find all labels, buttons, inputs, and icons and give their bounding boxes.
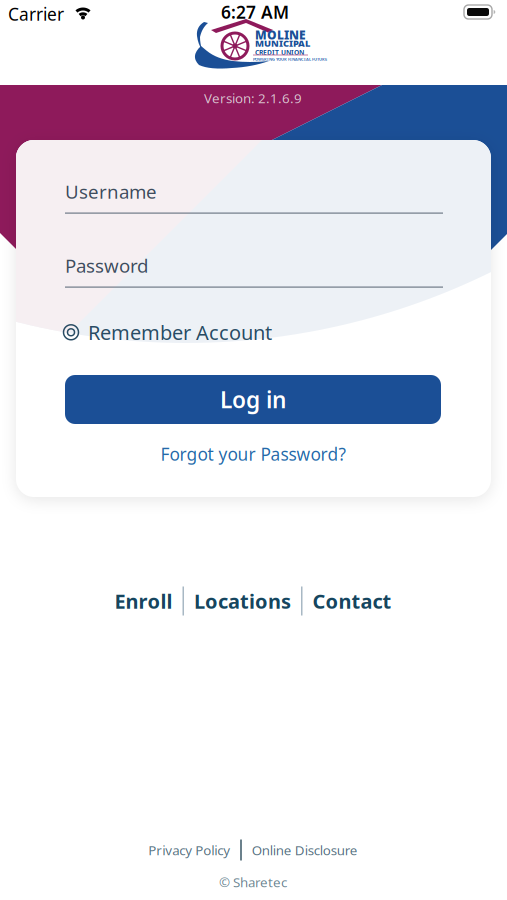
staticText: Version: 2.1.6.9 (204, 89, 302, 107)
button[interactable]: Forgot your Password? (160, 442, 346, 465)
staticText: Locations (194, 588, 291, 614)
staticText: POWERING YOUR FINANCIAL FUTURE (253, 56, 327, 62)
staticText: MOLINE (255, 27, 306, 43)
staticText: Forgot your Password? (160, 442, 346, 465)
button[interactable]: Contact (312, 588, 391, 614)
staticText: © Sharetec (219, 873, 287, 891)
button[interactable]: Locations (194, 588, 291, 614)
staticText: CREDIT UNION (255, 48, 304, 57)
staticText: MUNICIPAL (255, 37, 310, 49)
staticText: 6:27 AM (221, 0, 289, 23)
staticText: Enroll (114, 588, 172, 614)
button[interactable]: Username (65, 184, 443, 214)
staticText: Online Disclosure (252, 841, 358, 859)
button[interactable]: Enroll (114, 588, 172, 614)
staticText: Log in (220, 384, 286, 414)
button[interactable]: Online Disclosure (252, 841, 358, 859)
button[interactable]: Remember Account (63, 319, 272, 346)
button[interactable]: Password (65, 258, 443, 288)
staticText: Username (65, 179, 157, 204)
staticText: Contact (312, 588, 391, 614)
button[interactable]: Log in (65, 375, 441, 424)
button[interactable]: Privacy Policy (148, 841, 230, 859)
staticText: Carrier (8, 2, 64, 25)
staticText: Privacy Policy (148, 841, 230, 859)
staticText: Remember Account (88, 319, 272, 346)
staticText: Password (65, 253, 148, 278)
